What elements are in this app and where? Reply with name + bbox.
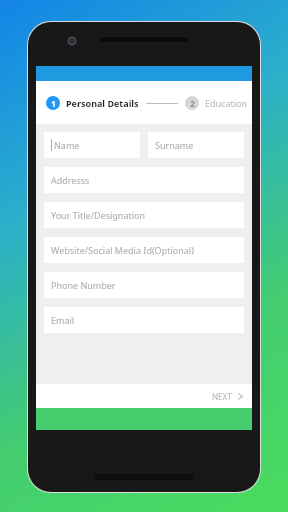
staticText: 2 <box>190 98 195 109</box>
staticText: NEXT <box>212 391 232 402</box>
button[interactable]: Name <box>44 132 140 158</box>
staticText: Educational Details <box>205 97 252 109</box>
staticText: Email <box>51 314 75 326</box>
button[interactable]: 1 <box>46 96 139 110</box>
staticText: Phone Number <box>51 279 116 291</box>
button[interactable]: Phone Number <box>44 272 244 298</box>
button[interactable]: Addresss <box>44 167 244 193</box>
staticText: Your Title/Designation <box>51 209 146 221</box>
button[interactable]: Your Title/Designation <box>44 202 244 228</box>
staticText: Personal Details <box>66 97 139 109</box>
staticText: Name <box>54 139 80 151</box>
button[interactable]: 2 <box>185 96 252 110</box>
staticText: 1 <box>51 98 56 109</box>
staticText: Addresss <box>51 174 90 186</box>
staticText: Surname <box>155 139 194 151</box>
button[interactable]: Website/Social Media Id(Optional) <box>44 237 244 263</box>
button[interactable]: NEXT <box>204 387 252 406</box>
button[interactable]: Email <box>44 307 244 333</box>
button[interactable]: Surname <box>148 132 244 158</box>
staticText: Website/Social Media Id(Optional) <box>51 244 194 256</box>
